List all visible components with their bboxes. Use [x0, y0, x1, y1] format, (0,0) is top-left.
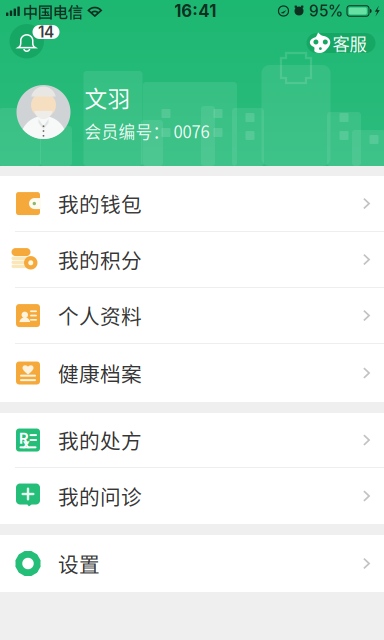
button[interactable]: 客服 — [306, 24, 375, 53]
button[interactable]: 我的钱包 — [0, 176, 384, 232]
staticText: 中国电信 — [23, 0, 83, 22]
staticText: 14 — [38, 23, 54, 41]
staticText: 我的积分 — [58, 245, 142, 274]
staticText: 健康档案 — [58, 358, 142, 388]
staticText: 个人资料 — [58, 301, 142, 330]
staticText: x — [23, 436, 30, 451]
staticText: 我的钱包 — [58, 189, 142, 218]
staticText: 16:41 — [174, 1, 216, 21]
button[interactable]: 设置 — [0, 535, 384, 592]
staticText: 文羽 — [84, 81, 130, 114]
staticText: 95% — [309, 2, 343, 20]
staticText: R — [19, 429, 29, 447]
button[interactable]: 我的积分 — [0, 232, 384, 288]
button[interactable]: R — [0, 413, 384, 468]
button[interactable]: 我的问诊 — [0, 468, 384, 524]
staticText: 设置 — [58, 548, 100, 578]
staticText: 我的处方 — [58, 425, 142, 455]
button[interactable]: 健康档案 — [0, 344, 384, 402]
staticText: 客服 — [332, 30, 366, 56]
button[interactable]: 通知 — [9, 24, 65, 60]
staticText: 我的问诊 — [58, 481, 142, 511]
button[interactable]: 个人资料 — [0, 288, 384, 344]
staticText: 会员编号： 0076 — [84, 119, 209, 143]
